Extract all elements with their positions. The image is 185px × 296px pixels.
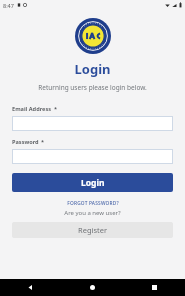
staticText: Register — [78, 225, 108, 235]
staticText: Login — [81, 177, 105, 189]
button[interactable]: Recent apps — [123, 279, 185, 296]
staticText: Login — [0, 60, 185, 78]
staticText: Password — [12, 138, 39, 146]
staticText: 8:47 — [3, 2, 14, 9]
staticText: * — [54, 105, 58, 113]
staticText: Are you a new user? — [12, 209, 173, 217]
staticText: FORGOT PASSWORD? — [67, 200, 119, 207]
staticText: Returning users please login below. — [0, 83, 185, 92]
button[interactable]: FORGOT PASSWORD? — [12, 200, 173, 207]
button[interactable]: Register — [12, 222, 173, 238]
staticText: * — [41, 138, 45, 146]
button[interactable]: Back — [0, 279, 61, 296]
button[interactable]: Login — [12, 173, 173, 192]
button[interactable] — [12, 116, 173, 131]
staticText: Email Address — [12, 105, 52, 113]
button[interactable]: Home — [61, 279, 123, 296]
button[interactable] — [12, 149, 173, 164]
